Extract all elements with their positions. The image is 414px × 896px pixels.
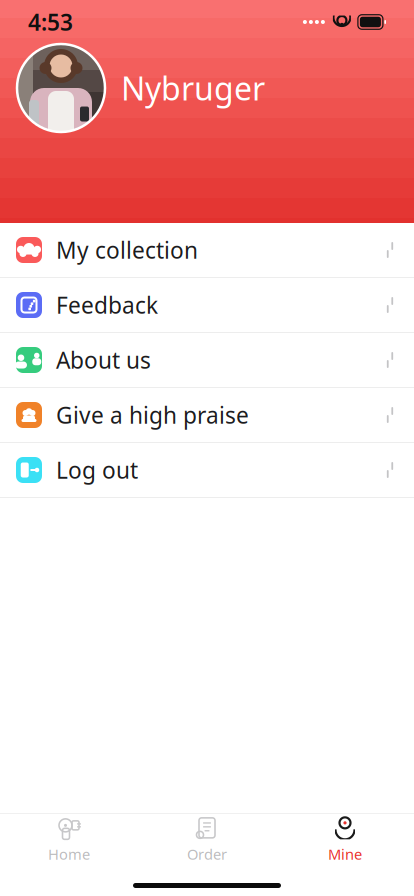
staticText: My collection	[56, 235, 198, 265]
staticText: Feedback	[56, 290, 158, 320]
button[interactable]: Order	[138, 815, 276, 865]
staticText: 4:53	[28, 7, 73, 37]
button[interactable]: Feedback	[0, 278, 414, 333]
button[interactable]: About us	[0, 333, 414, 388]
staticText: Nybruger	[121, 67, 265, 109]
button[interactable]: Home	[0, 815, 138, 865]
staticText: Home	[48, 844, 90, 864]
button[interactable]: My collection	[0, 223, 414, 278]
staticText: Give a high praise	[56, 400, 249, 430]
button[interactable]: Mine	[276, 815, 414, 865]
staticText: Order	[187, 844, 227, 864]
button[interactable]: Log out	[0, 443, 414, 498]
staticText: Log out	[56, 455, 138, 485]
button[interactable]: Give a high praise	[0, 388, 414, 443]
staticText: Mine	[328, 844, 362, 864]
staticText: About us	[56, 345, 151, 375]
